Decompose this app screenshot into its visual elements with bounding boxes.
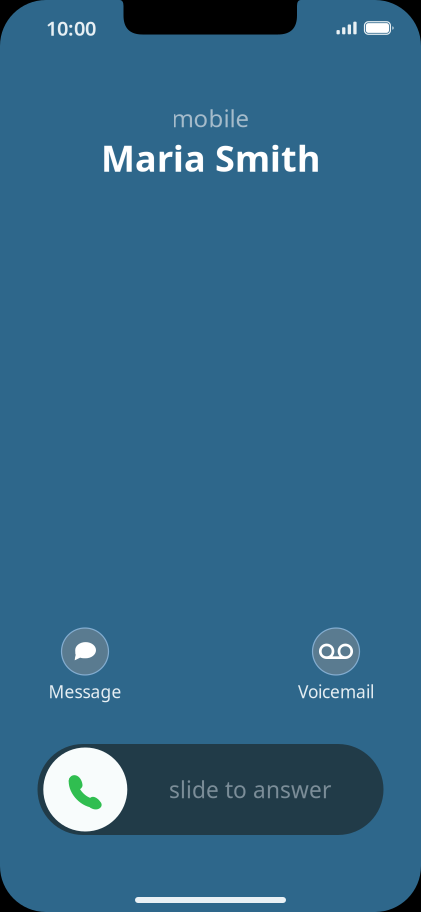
staticText: Maria Smith	[101, 134, 320, 182]
staticText: mobile	[171, 102, 249, 134]
staticText: slide to answer	[169, 774, 331, 804]
staticText: Voicemail	[298, 680, 374, 703]
button[interactable]: Voicemail	[280, 626, 392, 703]
button[interactable]: Message	[29, 626, 141, 703]
staticText: Message	[48, 680, 121, 703]
staticText: 10:00	[46, 15, 96, 41]
button[interactable]: slide to answer	[37, 744, 383, 835]
